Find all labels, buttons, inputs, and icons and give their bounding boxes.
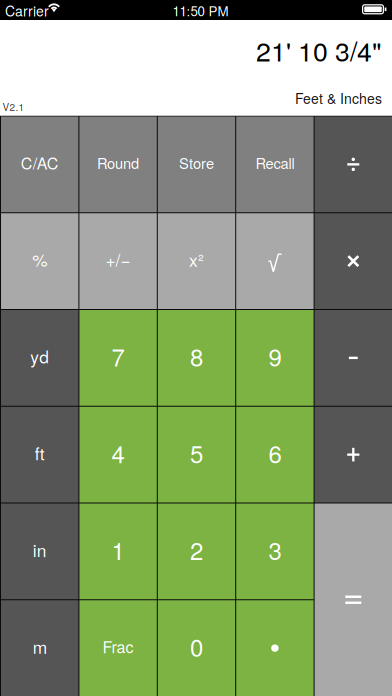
button[interactable]: 5 <box>158 407 235 503</box>
staticText: yd <box>30 344 49 368</box>
button[interactable]: in <box>1 503 78 599</box>
staticText: 2 <box>190 532 203 567</box>
button[interactable]: 8 <box>158 310 235 406</box>
button[interactable]: 4 <box>79 407 157 503</box>
staticText: Recall <box>255 152 294 173</box>
button[interactable]: 1 <box>79 503 157 599</box>
button[interactable]: 0 <box>158 600 235 696</box>
staticText: Frac <box>103 635 134 658</box>
button[interactable]: Round <box>79 116 157 212</box>
staticText: 3 <box>268 532 281 567</box>
button[interactable]: 6 <box>236 407 314 503</box>
staticText: in <box>33 537 47 562</box>
button[interactable]: Equals <box>315 503 392 696</box>
staticText: 5 <box>190 436 203 470</box>
staticText: 4 <box>112 436 125 470</box>
button[interactable]: % <box>1 213 78 309</box>
staticText: 9 <box>268 339 281 373</box>
staticText: m <box>33 634 47 659</box>
button[interactable]: ft <box>1 407 78 503</box>
staticText: 6 <box>268 436 281 470</box>
staticText: 21' 10 3/4" <box>256 31 381 69</box>
button[interactable]: Store <box>158 116 235 212</box>
button[interactable]: m <box>1 600 78 696</box>
button[interactable]: 7 <box>79 310 157 406</box>
button[interactable]: Plus <box>315 407 392 503</box>
staticText: % <box>32 247 47 272</box>
staticText: Store <box>179 152 214 173</box>
staticText: 8 <box>190 339 203 373</box>
button[interactable]: Decimal point <box>236 600 314 696</box>
staticText: ft <box>35 440 45 465</box>
staticText: 11:50 PM <box>172 1 228 20</box>
staticText: Round <box>97 152 139 173</box>
button[interactable]: Multiply <box>315 213 392 309</box>
button[interactable]: yd <box>1 310 78 406</box>
button[interactable]: Recall <box>236 116 314 212</box>
button[interactable]: Square root <box>236 213 314 309</box>
button[interactable]: Frac <box>79 600 157 696</box>
button[interactable]: x² <box>158 213 235 309</box>
staticText: +/− <box>106 247 131 272</box>
staticText: x² <box>189 247 204 272</box>
staticText: V2.1 <box>2 99 24 114</box>
button[interactable]: 3 <box>236 503 314 599</box>
button[interactable]: +/− <box>79 213 157 309</box>
staticText: Feet & Inches <box>295 88 382 108</box>
button[interactable]: 9 <box>236 310 314 406</box>
button[interactable]: C/AC <box>1 116 78 212</box>
button[interactable]: Minus <box>315 310 392 406</box>
button[interactable]: 2 <box>158 503 235 599</box>
staticText: 1 <box>112 532 125 567</box>
staticText: Carrier <box>5 0 49 20</box>
button[interactable]: Divide <box>315 116 392 212</box>
staticText: 0 <box>190 629 203 663</box>
staticText: 7 <box>112 339 125 373</box>
staticText: C/AC <box>21 151 59 174</box>
